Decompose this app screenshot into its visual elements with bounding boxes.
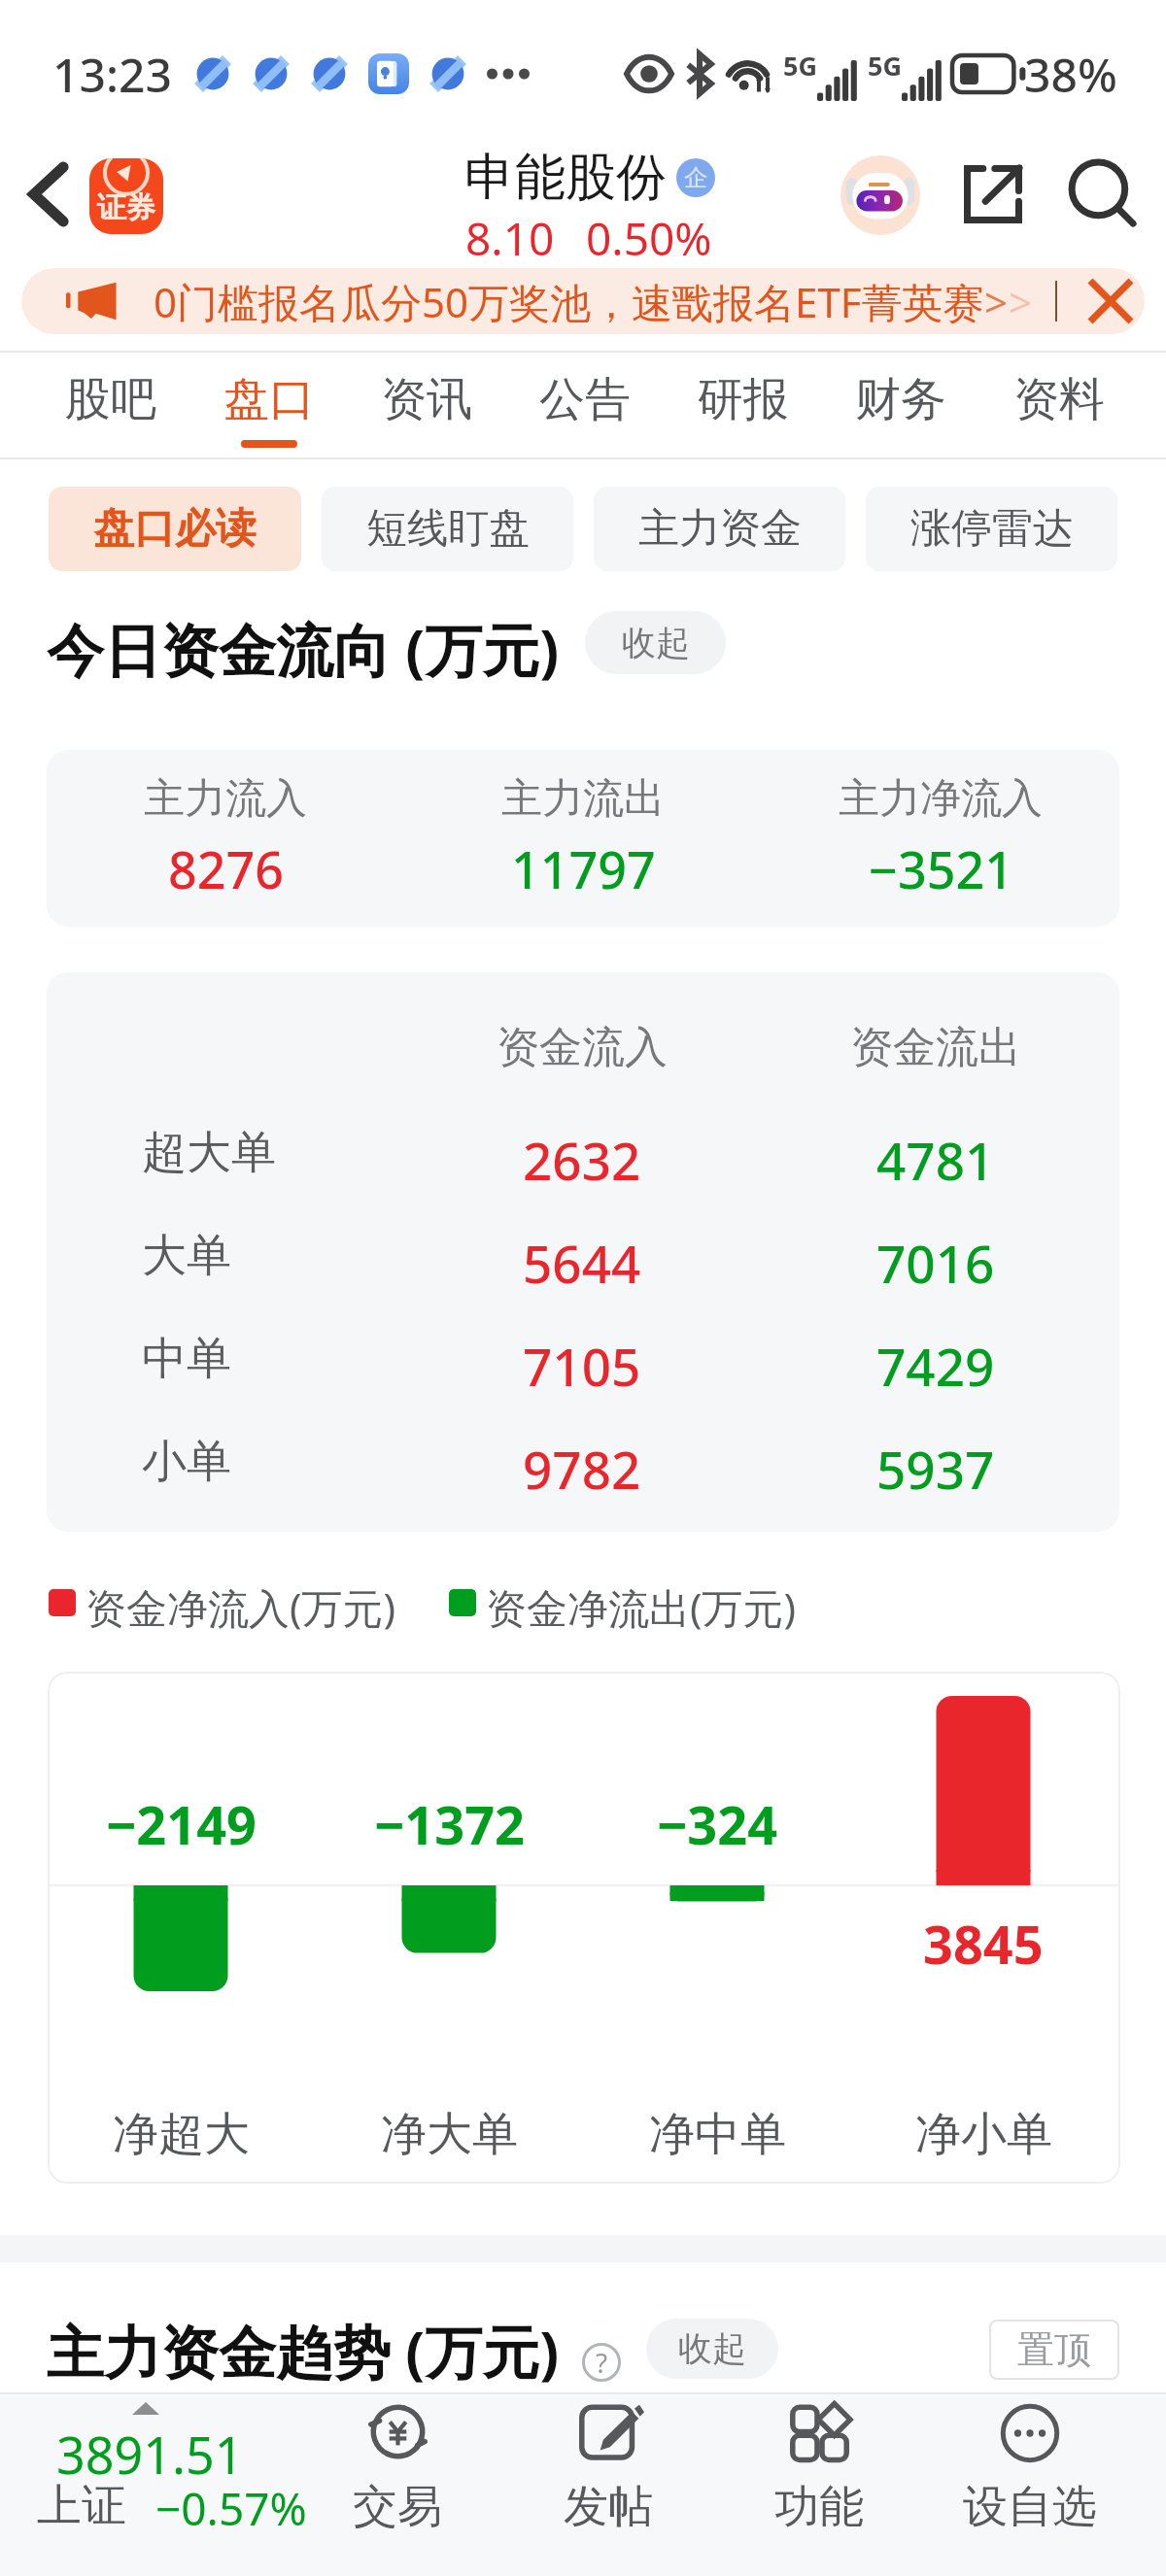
staticText: 资料 <box>1013 371 1105 428</box>
staticText: 9782 <box>523 1434 641 1496</box>
staticText: 公告 <box>539 371 631 428</box>
staticText: 收起 <box>678 2327 746 2370</box>
button[interactable]: Search <box>1065 155 1143 233</box>
staticText: 0.50% <box>586 208 712 269</box>
staticText: 主力流入 <box>144 773 307 825</box>
staticText: 资金流出 <box>850 1021 1021 1074</box>
staticText: −0.57% <box>155 2478 307 2539</box>
button[interactable]: 盘口 <box>223 353 315 458</box>
staticText: > <box>1009 274 1033 329</box>
button[interactable]: 盘口必读 <box>49 487 301 571</box>
button[interactable]: 涨停雷达 <box>866 487 1117 571</box>
staticText: 0门槛报名瓜分50万奖池，速戬报名ETF菁英赛 <box>154 274 984 329</box>
staticText: > <box>984 274 1009 329</box>
button[interactable]: 收起 <box>585 611 726 674</box>
staticText: 净大单 <box>381 2106 518 2163</box>
staticText: 5644 <box>523 1228 641 1290</box>
staticText: 交易 <box>353 2479 442 2535</box>
staticText: 发帖 <box>564 2479 653 2535</box>
button[interactable]: 短线盯盘 <box>322 487 573 571</box>
staticText: 小单 <box>142 1434 231 1490</box>
staticText: 申能股份 <box>464 146 667 210</box>
button[interactable]: 收起 <box>646 2319 778 2379</box>
staticText: 主力资金 <box>638 503 802 555</box>
button[interactable]: 设自选 <box>925 2392 1135 2576</box>
staticText: 资金净流出(万元) <box>486 1579 797 1635</box>
button[interactable]: 发帖 <box>503 2392 713 2576</box>
button[interactable]: 公告 <box>539 353 631 458</box>
button[interactable]: Securities app <box>89 158 163 234</box>
staticText: 研报 <box>698 371 789 428</box>
staticText: 8276 <box>168 834 284 903</box>
staticText: 短线盯盘 <box>366 503 530 555</box>
button[interactable]: 交易 <box>292 2392 502 2576</box>
staticText: 今日资金流向 (万元) <box>47 610 560 688</box>
staticText: 净小单 <box>915 2106 1052 2163</box>
staticText: 7016 <box>876 1228 995 1290</box>
button[interactable]: 0门槛报名瓜分50万奖池，速戬报名ETF菁英赛 <box>21 268 1145 334</box>
button[interactable]: 主力资金 <box>594 487 845 571</box>
staticText: 设自选 <box>963 2479 1097 2535</box>
button[interactable]: Share <box>954 155 1032 233</box>
staticText: 5937 <box>876 1434 995 1496</box>
staticText: 净超大 <box>113 2106 250 2163</box>
staticText: 4781 <box>876 1125 995 1187</box>
staticText: 功能 <box>774 2479 864 2535</box>
button[interactable]: 资讯 <box>381 353 472 458</box>
button[interactable]: Help <box>575 2336 628 2389</box>
staticText: ? <box>596 2344 608 2381</box>
staticText: −3521 <box>869 834 1013 903</box>
staticText: 5G <box>783 48 817 84</box>
button[interactable]: Close banner <box>1075 268 1145 334</box>
button[interactable]: AI assistant <box>840 155 920 235</box>
staticText: 上证 <box>37 2478 126 2534</box>
staticText: 7105 <box>523 1331 641 1393</box>
staticText: 净中单 <box>649 2106 786 2163</box>
staticText: 2632 <box>523 1125 641 1187</box>
staticText: 盘口 <box>223 371 315 428</box>
staticText: 资讯 <box>381 371 472 428</box>
staticText: 38% <box>1024 43 1117 105</box>
button[interactable]: 研报 <box>698 353 789 458</box>
staticText: 主力资金趋势 (万元) <box>47 2312 560 2390</box>
staticText: 资金净流入(万元) <box>86 1579 396 1635</box>
staticText: 中单 <box>142 1331 231 1387</box>
button[interactable]: Back <box>8 153 89 235</box>
staticText: 涨停雷达 <box>910 503 1074 555</box>
button[interactable]: 3891.51 <box>0 2392 321 2576</box>
staticText: 3891.51 <box>56 2420 244 2489</box>
staticText: 13:23 <box>52 43 172 105</box>
button[interactable]: 股吧 <box>65 353 156 458</box>
staticText: 资金流入 <box>497 1021 668 1074</box>
staticText: 盘口必读 <box>93 503 257 555</box>
staticText: 置顶 <box>1017 2326 1091 2373</box>
button[interactable]: 财务 <box>855 353 946 458</box>
staticText: 主力净流入 <box>839 773 1043 825</box>
staticText: 收起 <box>622 622 690 664</box>
button[interactable]: 置顶 <box>989 2320 1119 2380</box>
staticText: −324 <box>657 1788 778 1860</box>
staticText: −1372 <box>374 1788 525 1860</box>
staticText: 股吧 <box>65 371 156 428</box>
staticText: 3845 <box>923 1908 1044 1980</box>
staticText: 主力流出 <box>501 773 665 825</box>
staticText: 证券 <box>97 189 155 226</box>
staticText: −2149 <box>106 1788 257 1860</box>
staticText: 大单 <box>142 1228 231 1284</box>
staticText: 11797 <box>511 834 656 903</box>
staticText: 超大单 <box>142 1125 276 1181</box>
button[interactable]: 资料 <box>1013 353 1105 458</box>
staticText: 5G <box>868 48 902 84</box>
staticText: 企 <box>684 163 707 192</box>
staticText: 8.10 <box>465 208 555 269</box>
staticText: 财务 <box>855 371 946 428</box>
staticText: 7429 <box>876 1331 995 1393</box>
button[interactable]: 功能 <box>714 2392 924 2576</box>
